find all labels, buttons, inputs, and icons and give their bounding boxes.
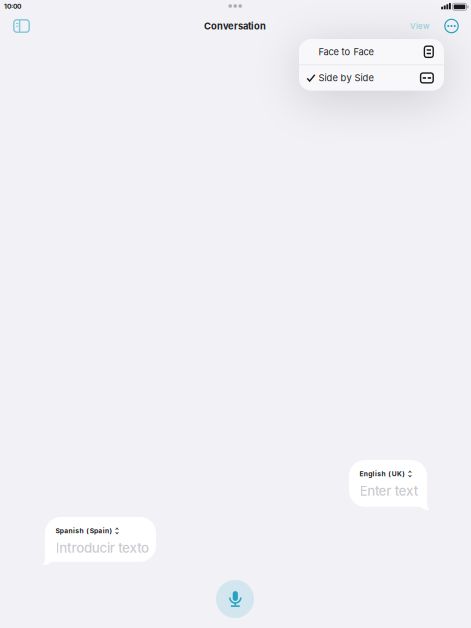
button[interactable]: Spanish (Spain)	[45, 517, 156, 565]
button[interactable]: View	[401, 13, 439, 39]
staticText: Face to Face	[319, 46, 374, 57]
staticText: Enter text	[359, 483, 419, 499]
button[interactable]: Toggle Sidebar	[6, 13, 36, 39]
button[interactable]: English (UK)	[349, 460, 427, 510]
staticText: English (UK)	[359, 470, 405, 478]
staticText: 10:00	[4, 2, 21, 10]
button[interactable]: Side by Side	[299, 65, 444, 91]
staticText: Side by Side	[319, 72, 374, 83]
staticText: Conversation	[204, 20, 266, 31]
staticText: Spanish (Spain)	[55, 527, 112, 535]
button[interactable]: Face to Face	[299, 39, 444, 64]
staticText: Introducir texto	[55, 540, 149, 556]
button[interactable]: Start recording	[216, 580, 254, 618]
button[interactable]: More options	[438, 13, 464, 39]
button[interactable]: Conversation	[185, 13, 285, 39]
staticText: View	[410, 21, 430, 31]
